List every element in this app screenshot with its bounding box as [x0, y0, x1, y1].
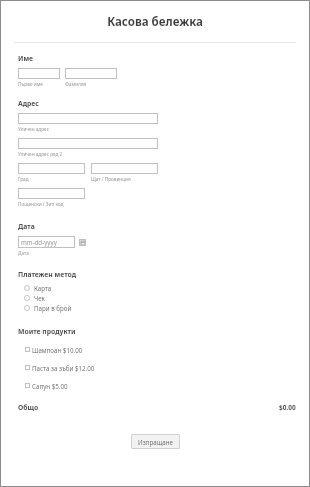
staticText: Изпращане [138, 438, 173, 446]
button[interactable] [91, 163, 158, 174]
staticText: Платежен метод [18, 270, 76, 279]
staticText: Уличен адрес ред 2 [18, 151, 63, 157]
button[interactable]: mm-dd-yyyy [18, 236, 75, 248]
staticText: Щат / Провинция [91, 176, 131, 182]
staticText: Град [18, 176, 29, 182]
staticText: Пари в брой [34, 304, 72, 312]
button[interactable]: Избор на дата [79, 239, 86, 246]
button[interactable]: Чек [18, 293, 296, 303]
button[interactable]: Сапун $5.00 [18, 379, 296, 392]
staticText: Пощенски / Зип код [18, 201, 64, 207]
button[interactable] [18, 68, 60, 79]
staticText: Уличен адрес [18, 126, 49, 132]
button[interactable]: Карта [18, 283, 296, 293]
button[interactable]: Шампоан $10.00 [18, 343, 296, 356]
staticText: Фамилия [65, 81, 87, 87]
staticText: Касова бележка [0, 14, 310, 30]
staticText: Шампоан $10.00 [32, 346, 83, 354]
staticText: Име [18, 54, 34, 63]
staticText: Паста за зъби $12.00 [32, 364, 95, 372]
button[interactable] [18, 113, 158, 124]
button[interactable]: Паста за зъби $12.00 [18, 361, 296, 374]
staticText: Адрес [18, 99, 39, 108]
button[interactable] [65, 68, 117, 79]
staticText: Сапун $5.00 [32, 382, 68, 390]
staticText: Моите продукти [18, 327, 76, 336]
button[interactable] [18, 138, 158, 149]
button[interactable] [18, 163, 85, 174]
button[interactable]: Пари в брой [18, 303, 296, 313]
button[interactable]: Изпращане [131, 434, 180, 449]
staticText: Първо име [18, 81, 43, 87]
staticText: Дата [18, 222, 35, 231]
staticText: mm-dd-yyyy [21, 238, 57, 246]
staticText: Общо [18, 403, 39, 412]
staticText: $0.00 [279, 403, 296, 412]
staticText: Дата [18, 250, 29, 256]
staticText: Чек [34, 294, 45, 302]
staticText: Карта [34, 284, 52, 292]
button[interactable] [18, 188, 85, 199]
